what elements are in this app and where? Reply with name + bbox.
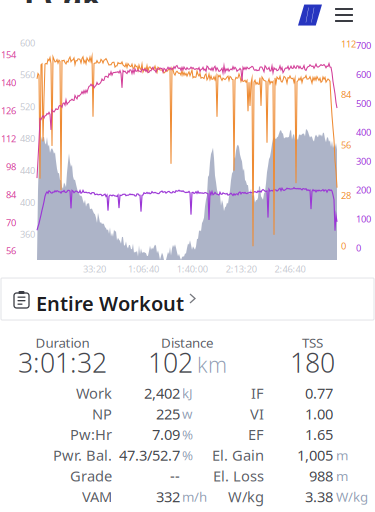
staticText: 0	[341, 240, 346, 252]
staticText: 1:06:40	[128, 263, 159, 275]
staticText: 700	[356, 39, 371, 52]
staticText: kJ	[182, 384, 193, 402]
staticText: 100	[356, 213, 371, 225]
staticText: Distance	[161, 334, 214, 351]
staticText: 360	[20, 228, 35, 240]
staticText: TSS	[302, 334, 323, 351]
staticText: 560	[20, 68, 35, 81]
staticText: 70	[6, 216, 16, 229]
staticText: Pw:Hr	[70, 425, 112, 444]
staticText: Duration	[35, 334, 89, 351]
staticText: EF	[248, 425, 264, 444]
staticText: VI	[250, 404, 264, 423]
staticText: 102	[148, 345, 193, 380]
staticText: 28	[341, 189, 351, 202]
staticText: 400	[356, 126, 371, 138]
staticText: 84	[6, 188, 16, 201]
staticText: 500	[356, 97, 371, 109]
staticText: 33:20	[83, 263, 106, 275]
staticText: Entire Workout	[36, 290, 184, 317]
staticText: 400	[20, 196, 35, 208]
staticText: m	[336, 467, 348, 485]
staticText: m/h	[182, 488, 207, 505]
staticText: 112	[1, 132, 16, 145]
staticText: 56	[6, 244, 16, 257]
staticText: IF	[251, 383, 264, 403]
staticText: W/kg	[336, 488, 368, 505]
staticText: El. Gain	[212, 445, 264, 465]
staticText: NP	[92, 404, 112, 423]
button[interactable]: Menu	[335, 8, 353, 22]
staticText: 332	[156, 487, 180, 506]
staticText: 600	[356, 68, 371, 81]
staticText: 56	[341, 139, 351, 151]
staticText: %	[182, 425, 193, 443]
staticText: km	[197, 350, 227, 379]
staticText: Grade	[70, 466, 112, 486]
staticText: 3.38	[305, 487, 333, 506]
staticText: 480	[20, 132, 35, 145]
staticText: 2:13:20	[226, 263, 257, 275]
staticText: 7.09	[152, 425, 180, 444]
staticText: 200	[356, 184, 371, 196]
staticText: 1.65	[305, 425, 333, 444]
staticText: W/kg	[228, 487, 264, 506]
staticText: 180	[290, 345, 335, 380]
staticText: 225	[156, 404, 180, 423]
staticText: El. Loss	[213, 466, 264, 486]
staticText: 126	[1, 104, 16, 117]
staticText: 84	[341, 88, 351, 101]
staticText: Work	[76, 383, 112, 403]
staticText: 600	[20, 37, 35, 49]
staticText: Pwr. Bal.	[53, 445, 112, 465]
staticText: 300	[356, 155, 371, 167]
staticText: Peak Data	[24, 0, 185, 16]
staticText: VAM	[82, 487, 112, 506]
staticText: 440	[20, 164, 35, 177]
staticText: 98	[6, 160, 16, 173]
staticText: --	[170, 466, 180, 486]
button[interactable]: TrainingPeaks	[298, 4, 322, 25]
staticText: 0	[356, 242, 361, 254]
staticText: m	[336, 446, 348, 464]
staticText: 520	[20, 100, 35, 113]
staticText: 140	[1, 76, 16, 89]
button[interactable]: Entire Workout	[1, 278, 374, 320]
staticText: w	[182, 405, 192, 422]
staticText: %	[182, 446, 193, 464]
staticText: 2:46:40	[275, 263, 306, 275]
staticText: 0.77	[305, 383, 333, 403]
staticText: 1.00	[305, 404, 333, 423]
staticText: 988	[309, 466, 333, 486]
staticText: 2,402	[144, 383, 180, 403]
staticText: 154	[1, 48, 16, 61]
staticText: 112	[341, 38, 356, 50]
staticText: 3:01:32	[18, 345, 107, 380]
staticText: 1:40:00	[177, 263, 208, 275]
staticText: 1,005	[297, 445, 333, 465]
staticText: 47.3/52.7	[119, 445, 180, 465]
